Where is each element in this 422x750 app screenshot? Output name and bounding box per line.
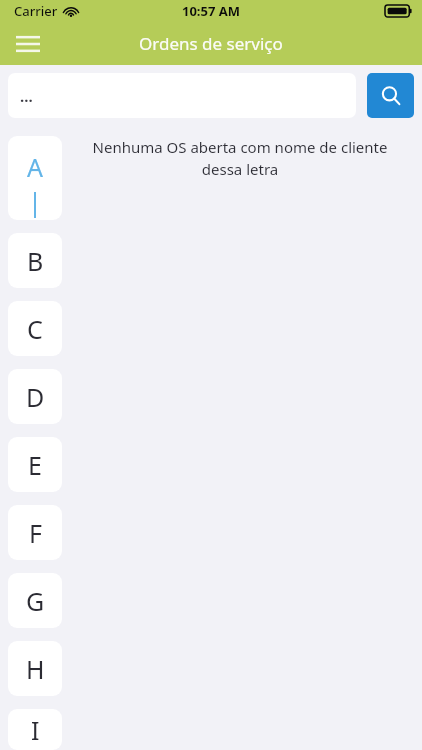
button[interactable]: Open navigation menu <box>6 22 50 65</box>
staticText: H <box>26 652 45 686</box>
button[interactable]: B <box>8 233 62 288</box>
staticText: E <box>28 448 42 482</box>
staticText: Nenhuma OS aberta com nome de cliente de… <box>80 137 400 180</box>
button[interactable]: F <box>8 505 62 560</box>
staticText: F <box>29 516 42 550</box>
button[interactable]: Search <box>367 73 414 118</box>
button[interactable]: A <box>8 136 62 220</box>
staticText: I <box>31 713 40 747</box>
staticText: D <box>26 380 45 414</box>
button[interactable]: I <box>8 709 62 750</box>
button[interactable]: E <box>8 437 62 492</box>
staticText: C <box>27 312 43 346</box>
button[interactable]: ... <box>8 73 356 118</box>
staticText: 10:57 AM <box>182 2 241 20</box>
staticText: B <box>27 244 44 278</box>
staticText: ... <box>20 86 33 106</box>
button[interactable]: C <box>8 301 62 356</box>
button[interactable]: D <box>8 369 62 424</box>
staticText: Carrier <box>14 2 58 20</box>
staticText: A <box>27 150 43 184</box>
staticText: Ordens de serviço <box>139 32 283 55</box>
staticText: G <box>26 584 45 618</box>
button[interactable]: H <box>8 641 62 696</box>
button[interactable]: G <box>8 573 62 628</box>
